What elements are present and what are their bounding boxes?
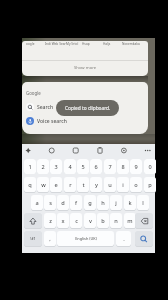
staticText: Copied to clipboard. [65, 105, 111, 112]
staticText: 9 [134, 163, 138, 171]
staticText: 8 [121, 163, 125, 171]
button[interactable]: 0 [144, 159, 156, 174]
staticText: 0 [148, 163, 152, 171]
button[interactable]: t [77, 177, 89, 192]
staticText: d [61, 199, 65, 207]
button[interactable]: 3 [50, 159, 62, 174]
staticText: o [134, 181, 138, 189]
button[interactable]: b [97, 213, 109, 228]
button[interactable]: 1 [24, 159, 36, 174]
button[interactable]: q [24, 177, 36, 192]
staticText: i [122, 181, 124, 189]
button[interactable]: x [57, 213, 69, 228]
staticText: a [35, 199, 39, 207]
staticText: Haljs [103, 42, 111, 46]
button[interactable]: r [64, 177, 76, 192]
button[interactable]: 5 [77, 159, 89, 174]
staticText: v [89, 217, 92, 225]
button[interactable]: 2 [37, 159, 49, 174]
button[interactable]: v [84, 213, 96, 228]
staticText: p [148, 181, 152, 189]
staticText: 3 [54, 163, 58, 171]
button[interactable]: e [50, 177, 62, 192]
staticText: 1 [28, 163, 32, 171]
button[interactable]: k [124, 195, 136, 210]
staticText: n [114, 217, 118, 225]
button[interactable]: a [31, 195, 43, 210]
staticText: w [41, 181, 46, 189]
staticText: 7 [108, 163, 112, 171]
staticText: Voice search [37, 118, 67, 125]
button[interactable]: p [144, 177, 156, 192]
button[interactable]: n [110, 213, 122, 228]
staticText: c [75, 217, 78, 225]
button[interactable]: 4 [64, 159, 76, 174]
staticText: f [75, 199, 77, 207]
staticText: My Srtol [66, 42, 79, 46]
button[interactable]: y [90, 177, 102, 192]
button[interactable]: . [116, 231, 131, 246]
button[interactable]: f [70, 195, 82, 210]
button[interactable]: l [137, 195, 149, 210]
staticText: Indi Web Sear [45, 42, 66, 46]
button[interactable]: o [130, 177, 142, 192]
staticText: l [142, 199, 144, 207]
staticText: Hsap [82, 42, 90, 46]
staticText: m [127, 217, 133, 225]
button[interactable]: 9 [130, 159, 142, 174]
button[interactable]: d [57, 195, 69, 210]
button[interactable]: 8 [117, 159, 129, 174]
button[interactable]: z [44, 213, 56, 228]
staticText: s [49, 199, 52, 207]
staticText: 5 [81, 163, 85, 171]
staticText: oogle [26, 42, 35, 46]
staticText: 2 [41, 163, 45, 171]
staticText: t [82, 181, 85, 189]
button[interactable]: !#1 [24, 231, 42, 246]
staticText: k [128, 199, 132, 207]
button[interactable]: m [124, 213, 136, 228]
button[interactable]: English (UK) [57, 231, 114, 246]
staticText: y [95, 181, 98, 189]
button[interactable] [135, 213, 153, 228]
button[interactable]: i [117, 177, 129, 192]
staticText: e [54, 181, 58, 189]
button[interactable]: 7 [104, 159, 116, 174]
button[interactable]: 6 [90, 159, 102, 174]
staticText: Novemkaka [122, 42, 140, 46]
staticText: z [49, 217, 52, 225]
staticText: Google [26, 90, 41, 96]
staticText: English (UK) [75, 236, 97, 241]
staticText: 4 [68, 163, 72, 171]
staticText: b [101, 217, 105, 225]
button[interactable]: w [37, 177, 49, 192]
staticText: r [69, 181, 72, 189]
button[interactable] [24, 101, 84, 114]
staticText: h [101, 199, 105, 207]
staticText: x [61, 217, 65, 225]
button[interactable]: s [44, 195, 56, 210]
button[interactable]: c [70, 213, 82, 228]
button[interactable]: , [44, 231, 56, 246]
staticText: j [115, 199, 117, 207]
button[interactable] [24, 115, 84, 128]
button[interactable]: h [97, 195, 109, 210]
staticText: g [88, 199, 92, 207]
staticText: u [108, 181, 112, 189]
staticText: !#1 [30, 236, 36, 241]
button[interactable]: j [110, 195, 122, 210]
staticText: Search [37, 104, 54, 111]
staticText: , [49, 235, 51, 243]
button[interactable] [135, 231, 153, 246]
staticText: 6 [94, 163, 98, 171]
button[interactable]: u [104, 177, 116, 192]
staticText: . [123, 235, 125, 243]
button[interactable]: g [84, 195, 96, 210]
button[interactable]: Show more [22, 60, 148, 76]
staticText: q [28, 181, 32, 189]
button[interactable] [24, 213, 42, 228]
staticText: Show more [74, 65, 97, 71]
